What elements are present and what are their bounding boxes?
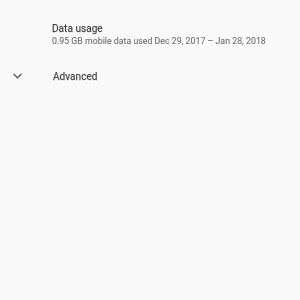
staticText: Advanced <box>53 71 98 83</box>
other: Expand advanced settings <box>0 60 35 90</box>
staticText: Data usage <box>52 23 103 35</box>
button[interactable]: Data usage <box>0 12 300 60</box>
staticText: 0.95 GB mobile data used Dec 29, 2017 – … <box>52 36 266 46</box>
staticText: Advanced <box>53 71 98 83</box>
staticText: Data usage <box>52 23 103 35</box>
staticText: 0.95 GB mobile data used Dec 29, 2017 – … <box>52 36 266 46</box>
button[interactable]: Expand advanced settings <box>0 60 300 90</box>
